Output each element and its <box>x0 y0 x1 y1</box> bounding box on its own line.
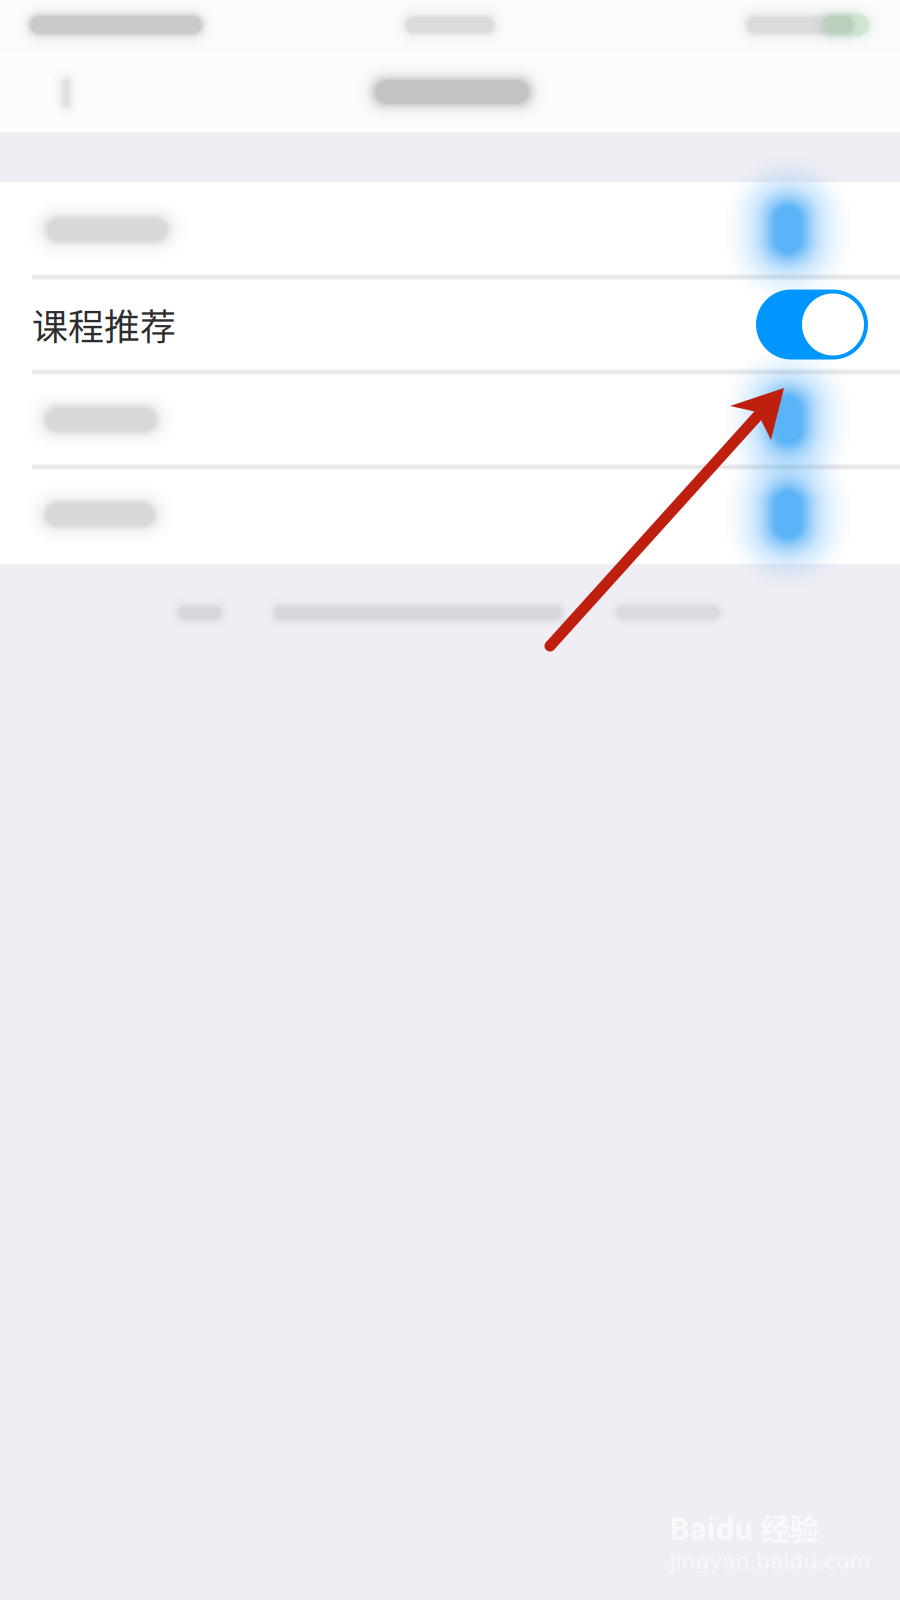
button[interactable]: Switch <box>658 104 900 354</box>
button[interactable]: Switch <box>658 294 900 544</box>
staticText: jingyan.baidu.com <box>669 1549 870 1574</box>
staticText: 课程推荐 <box>32 298 176 350</box>
button[interactable]: 课程推荐 <box>0 277 900 372</box>
button[interactable]: 课程推荐 switch, on <box>756 289 868 359</box>
button[interactable]: Switch <box>658 389 900 639</box>
staticText: Baidu 经验 <box>669 1506 818 1548</box>
